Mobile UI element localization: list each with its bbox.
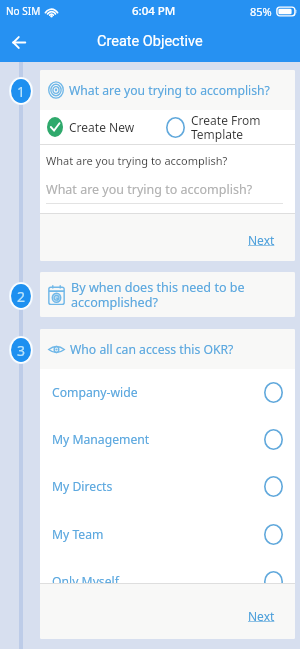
button[interactable]: Next — [40, 214, 295, 261]
staticText: What are you trying to accomplish? — [46, 181, 253, 198]
staticText: Company-wide — [52, 384, 264, 401]
button[interactable]: Create New — [44, 110, 166, 144]
button[interactable]: Create From Template — [166, 110, 289, 144]
button[interactable]: By when does this need to be accomplishe… — [40, 272, 295, 317]
staticText: 2 — [17, 287, 26, 306]
staticText: 6:04 PM — [132, 3, 176, 19]
staticText: My Directs — [52, 478, 264, 495]
staticText: Next — [248, 608, 275, 624]
staticText: 85% — [250, 4, 272, 19]
staticText: Only Myself — [52, 573, 264, 583]
staticText: Who all can access this OKR? — [70, 341, 234, 358]
staticText: Create Objective — [97, 33, 203, 50]
button[interactable]: Only Myself — [40, 558, 295, 583]
staticText: My Team — [52, 526, 264, 543]
staticText: 3 — [17, 341, 26, 360]
button[interactable]: My Management — [40, 416, 295, 463]
button[interactable]: Back — [3, 26, 35, 58]
button[interactable]: My Directs — [40, 463, 295, 510]
button[interactable]: Next — [40, 584, 295, 639]
staticText: Create From Template — [191, 112, 261, 142]
staticText: What are you trying to accomplish? — [69, 82, 270, 99]
button[interactable]: Company-wide — [40, 369, 295, 416]
staticText: What are you trying to accomplish? — [46, 153, 228, 168]
staticText: Create New — [69, 119, 135, 135]
button[interactable]: My Team — [40, 511, 295, 558]
staticText: My Management — [52, 431, 264, 448]
staticText: Next — [248, 232, 275, 248]
staticText: 1 — [17, 82, 26, 101]
staticText: No SIM — [6, 4, 41, 18]
staticText: By when does this need to be accomplishe… — [71, 279, 287, 311]
